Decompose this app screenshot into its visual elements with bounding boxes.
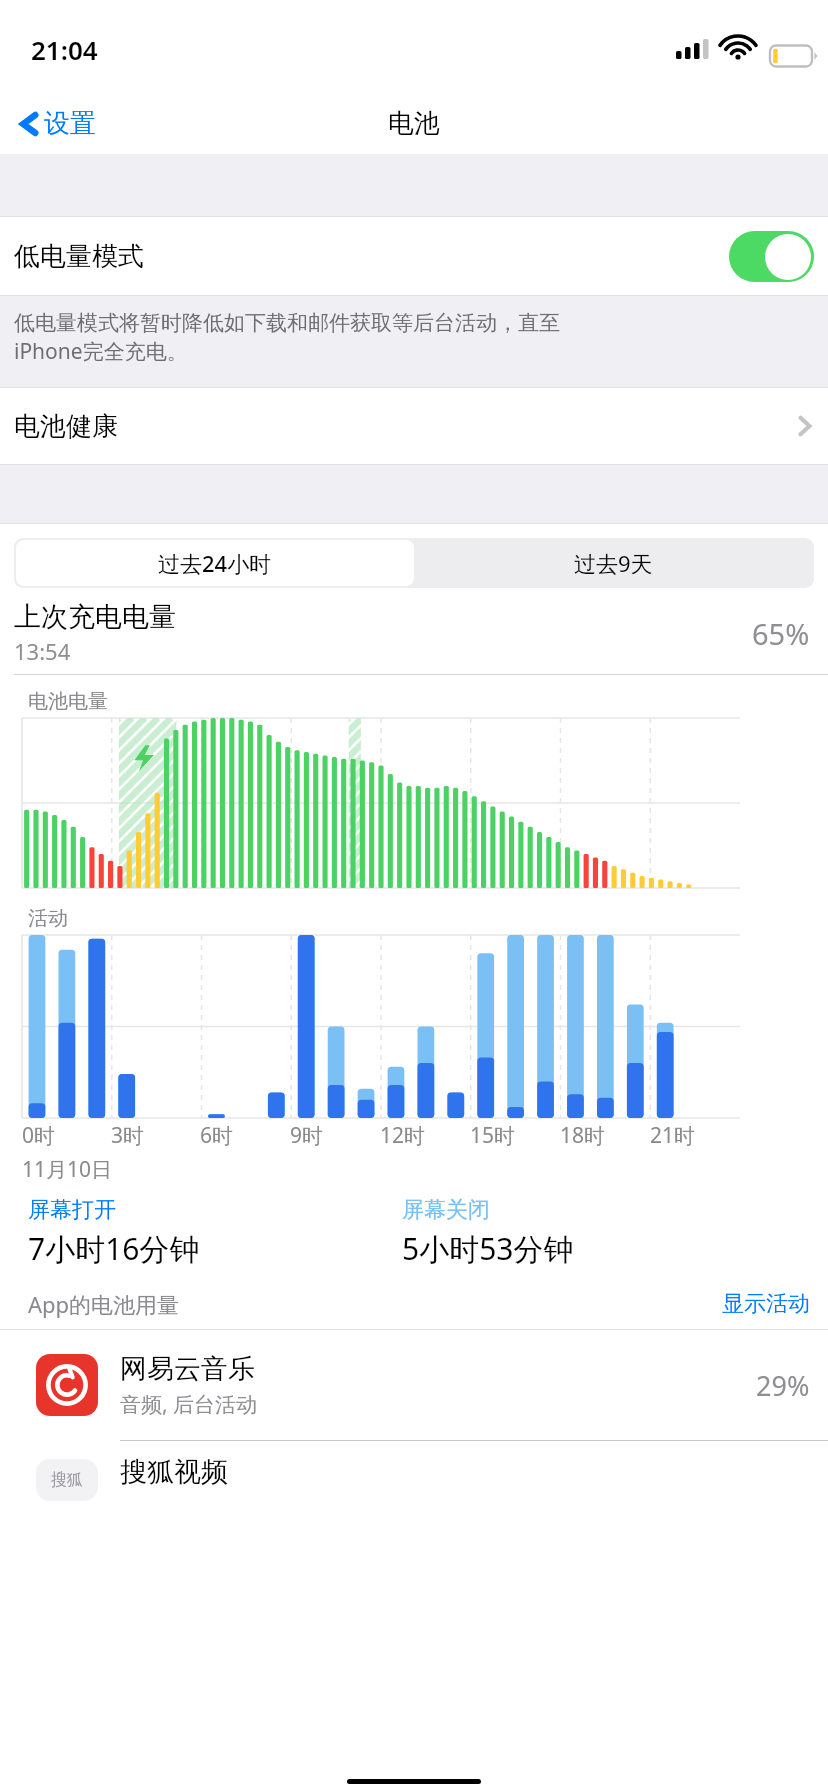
staticText: 5小时53分钟 xyxy=(402,1228,574,1269)
button[interactable]: 设置 xyxy=(14,101,102,146)
staticText: 21时 xyxy=(650,1121,696,1150)
staticText: 12时 xyxy=(380,1121,426,1150)
staticText: 搜狐 xyxy=(51,1470,83,1490)
staticText: 13:54 xyxy=(14,636,71,666)
staticText: 过去9天 xyxy=(574,548,653,578)
button[interactable]: 低电量模式开关 xyxy=(729,231,814,282)
button[interactable]: 电池健康 xyxy=(0,388,828,464)
staticText: 29% xyxy=(756,1367,810,1404)
staticText: 设置 xyxy=(44,107,96,140)
staticText: 音频, 后台活动 xyxy=(120,1390,258,1419)
staticText: 屏幕关闭 xyxy=(402,1196,490,1224)
staticText: 电池健康 xyxy=(14,410,118,443)
staticText: 电池电量 xyxy=(28,689,108,714)
staticText: 网易云音乐 xyxy=(120,1352,255,1386)
staticText: 低电量模式 xyxy=(14,240,144,273)
staticText: 过去24小时 xyxy=(158,548,272,578)
staticText: 搜狐视频 xyxy=(120,1455,228,1489)
button[interactable]: 显示活动 xyxy=(722,1290,810,1318)
button[interactable]: 低电量模式 xyxy=(0,217,828,295)
staticText: 11月10日 xyxy=(22,1155,113,1184)
staticText: 21:04 xyxy=(31,32,98,67)
staticText: App的电池用量 xyxy=(28,1289,180,1319)
staticText: 65% xyxy=(752,614,810,653)
staticText: 0时 xyxy=(22,1121,56,1150)
staticText: 上次充电电量 xyxy=(14,600,176,634)
staticText: 18时 xyxy=(560,1121,606,1150)
staticText: 电池 xyxy=(388,107,440,140)
staticText: 3时 xyxy=(111,1121,145,1150)
button[interactable]: 搜狐 xyxy=(0,1441,828,1501)
staticText: 15时 xyxy=(470,1121,516,1150)
button[interactable]: 过去24小时 xyxy=(16,540,414,586)
staticText: 显示活动 xyxy=(722,1290,810,1318)
staticText: 7小时16分钟 xyxy=(28,1228,200,1269)
staticText: 屏幕打开 xyxy=(28,1196,116,1224)
staticText: 低电量模式将暂时降低如下载和邮件获取等后台活动，直至 iPhone完全充电。 xyxy=(14,310,560,365)
button[interactable]: 网易云音乐 xyxy=(0,1330,828,1440)
staticText: 6时 xyxy=(200,1121,234,1150)
staticText: 活动 xyxy=(28,906,68,931)
button[interactable]: 过去9天 xyxy=(414,540,812,586)
staticText: 9时 xyxy=(290,1121,324,1150)
